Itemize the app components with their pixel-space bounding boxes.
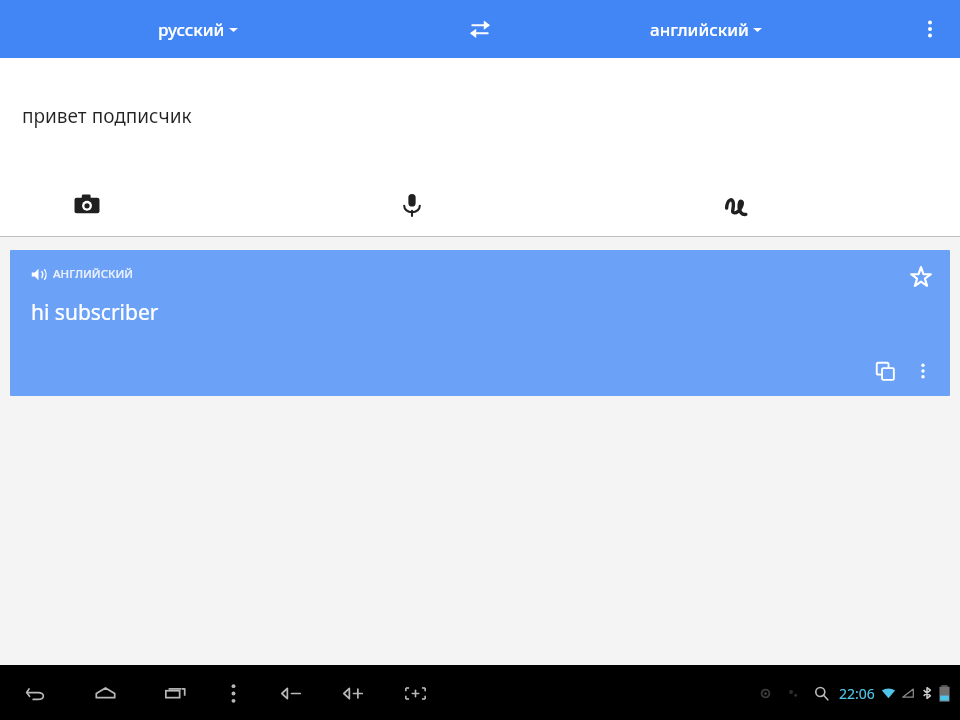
staticText: hi subscriber xyxy=(31,298,159,327)
button[interactable]: Menu xyxy=(210,670,256,716)
staticText: привет подписчик xyxy=(22,103,192,129)
button[interactable]: Handwriting input xyxy=(710,178,764,232)
button[interactable]: Voice input xyxy=(385,178,439,232)
button[interactable]: Home xyxy=(82,670,128,716)
button[interactable]: Translation options xyxy=(904,352,942,390)
staticText: английский xyxy=(650,18,749,41)
staticText: АНГЛИЙСКИЙ xyxy=(53,266,134,282)
staticText: русский xyxy=(158,18,225,41)
button[interactable]: Volume up xyxy=(330,670,376,716)
button[interactable]: More options xyxy=(908,7,952,51)
button[interactable]: Screenshot xyxy=(392,670,438,716)
button[interactable]: Camera input xyxy=(60,178,114,232)
button[interactable]: Swap languages xyxy=(458,7,502,51)
staticText: 22:06 xyxy=(839,684,875,703)
button[interactable]: английский xyxy=(642,12,770,47)
button[interactable]: Search xyxy=(807,679,835,707)
button[interactable]: Back xyxy=(12,670,58,716)
button[interactable]: Recent apps xyxy=(152,670,198,716)
button[interactable]: Rotate xyxy=(751,679,779,707)
button[interactable]: АНГЛИЙСКИЙ xyxy=(10,250,950,396)
button[interactable]: русский xyxy=(150,12,246,47)
button[interactable]: Save translation xyxy=(902,258,940,296)
button[interactable]: Volume down xyxy=(268,670,314,716)
button[interactable]: Copy translation xyxy=(866,352,904,390)
